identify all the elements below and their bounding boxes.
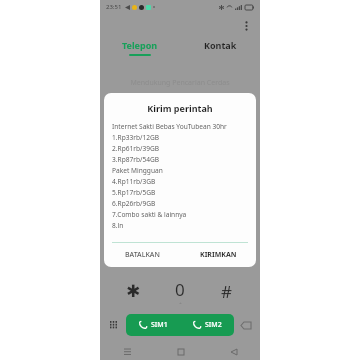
button[interactable]: KIRIMKAN: [180, 243, 256, 267]
staticText: TUV: [175, 261, 185, 268]
staticText: 6.Rp26rb/9GB: [112, 199, 156, 208]
staticText: 2.Rp61rb/39GB: [112, 144, 160, 153]
staticText: Kontak: [204, 39, 237, 51]
staticText: ✱: [126, 281, 141, 301]
staticText: WXYZ: [220, 261, 234, 268]
staticText: 8.ln: [112, 221, 124, 230]
staticText: 23:51: [106, 3, 122, 11]
staticText: Internet Sakti Bebas YouTubean 30hr: [112, 122, 227, 131]
staticText: Kirim perintah: [104, 102, 256, 114]
button[interactable]: ✱: [110, 278, 156, 304]
button[interactable]: Back: [207, 344, 260, 360]
button[interactable]: Recents: [100, 344, 154, 360]
staticText: 3.Rp87rb/54GB: [112, 155, 160, 164]
staticText: BATALKAN: [125, 250, 160, 260]
staticText: PQRS: [127, 261, 140, 268]
staticText: Telepon: [122, 39, 158, 51]
button[interactable]: Backspace: [238, 317, 254, 333]
button[interactable]: SIM2: [180, 314, 234, 336]
staticText: 7.Combo sakti & lainnya: [112, 210, 187, 219]
button[interactable]: Telepon: [100, 34, 180, 60]
button[interactable]: Hide dialpad: [106, 317, 122, 333]
staticText: Paket Mingguan: [112, 166, 163, 175]
staticText: 4.Rp11rb/3GB: [112, 177, 156, 186]
button[interactable]: #: [203, 278, 250, 304]
staticText: #: [221, 280, 232, 303]
button[interactable]: Home: [154, 344, 207, 360]
button[interactable]: 0: [156, 278, 203, 304]
button[interactable]: Kontak: [180, 34, 260, 60]
staticText: +: [179, 301, 182, 304]
staticText: 1.Rp33rb/12GB: [112, 133, 160, 142]
staticText: SIM2: [205, 320, 222, 330]
staticText: 0: [175, 278, 185, 301]
staticText: 5.Rp17rb/5GB: [112, 188, 156, 197]
button[interactable]: SIM1: [126, 314, 180, 336]
button[interactable]: More options: [238, 18, 254, 34]
staticText: SIM1: [151, 320, 168, 330]
button[interactable]: BATALKAN: [104, 243, 180, 267]
staticText: KIRIMKAN: [200, 250, 237, 260]
